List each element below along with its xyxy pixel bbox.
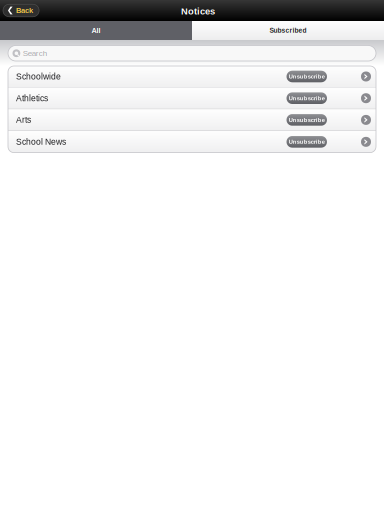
button[interactable]: Athletics bbox=[8, 88, 376, 109]
button[interactable]: Search bbox=[8, 45, 376, 61]
button[interactable]: Back bbox=[3, 4, 39, 17]
button[interactable]: Schoolwide bbox=[8, 66, 376, 88]
button[interactable]: School News bbox=[8, 131, 376, 153]
staticText: Back bbox=[16, 6, 33, 15]
staticText: Athletics bbox=[16, 93, 48, 103]
staticText: Unsubscribe bbox=[289, 117, 325, 123]
button[interactable]: Unsubscribe bbox=[286, 92, 327, 104]
staticText: Notices bbox=[181, 6, 215, 16]
button[interactable]: All bbox=[0, 21, 192, 40]
staticText: Arts bbox=[16, 115, 31, 125]
button[interactable]: Subscribed bbox=[192, 21, 384, 40]
staticText: Subscribed bbox=[269, 27, 306, 34]
staticText: All bbox=[91, 26, 100, 35]
staticText: Search bbox=[23, 49, 47, 58]
staticText: Unsubscribe bbox=[289, 95, 325, 101]
staticText: Schoolwide bbox=[16, 72, 61, 81]
staticText: Unsubscribe bbox=[289, 73, 325, 80]
button[interactable]: Arts bbox=[8, 109, 376, 131]
staticText: Unsubscribe bbox=[289, 139, 325, 145]
button[interactable]: Unsubscribe bbox=[286, 136, 327, 148]
button[interactable]: Unsubscribe bbox=[286, 114, 327, 126]
staticText: School News bbox=[16, 137, 66, 147]
button[interactable]: Unsubscribe bbox=[286, 71, 327, 82]
